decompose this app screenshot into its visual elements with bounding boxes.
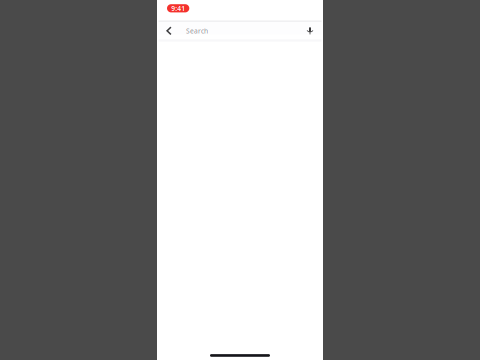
button[interactable]: Recording indicator, 9:41 [167, 4, 189, 12]
staticText: 9:41 [171, 4, 185, 13]
button[interactable]: Back [160, 22, 178, 39]
staticText: Search [186, 26, 208, 35]
button[interactable]: Search [186, 22, 304, 39]
button[interactable]: Voice search [303, 22, 317, 39]
